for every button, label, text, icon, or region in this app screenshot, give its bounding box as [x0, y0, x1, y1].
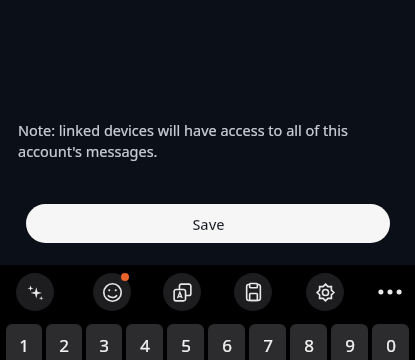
button[interactable]: Emoji [93, 273, 131, 311]
staticText: 2 [59, 334, 69, 357]
staticText: 8 [304, 334, 314, 357]
staticText: 9 [345, 334, 355, 357]
button[interactable]: Settings [306, 273, 344, 311]
button[interactable]: Translate [163, 273, 201, 311]
button[interactable]: 0 [372, 324, 409, 360]
staticText: Note: linked devices will have access to… [18, 120, 395, 162]
staticText: 0 [386, 334, 396, 357]
staticText: 4 [140, 334, 150, 357]
button[interactable]: 1 [6, 324, 42, 360]
button[interactable]: 7 [249, 324, 286, 360]
button[interactable]: 3 [86, 324, 122, 360]
button[interactable]: Clipboard [234, 273, 272, 311]
staticText: 6 [222, 334, 232, 357]
staticText: 7 [263, 334, 273, 357]
staticText: 5 [181, 334, 191, 357]
button[interactable]: 5 [167, 324, 204, 360]
button[interactable]: 4 [126, 324, 163, 360]
button[interactable]: 6 [208, 324, 245, 360]
button[interactable]: 8 [290, 324, 327, 360]
button[interactable]: 9 [331, 324, 368, 360]
staticText: 3 [99, 334, 109, 357]
staticText: Save [192, 214, 225, 234]
button[interactable]: Save [26, 204, 390, 243]
button[interactable]: Assist [16, 273, 54, 311]
staticText: 1 [19, 334, 29, 357]
button[interactable]: 2 [46, 324, 82, 360]
button[interactable]: More options [370, 281, 410, 303]
